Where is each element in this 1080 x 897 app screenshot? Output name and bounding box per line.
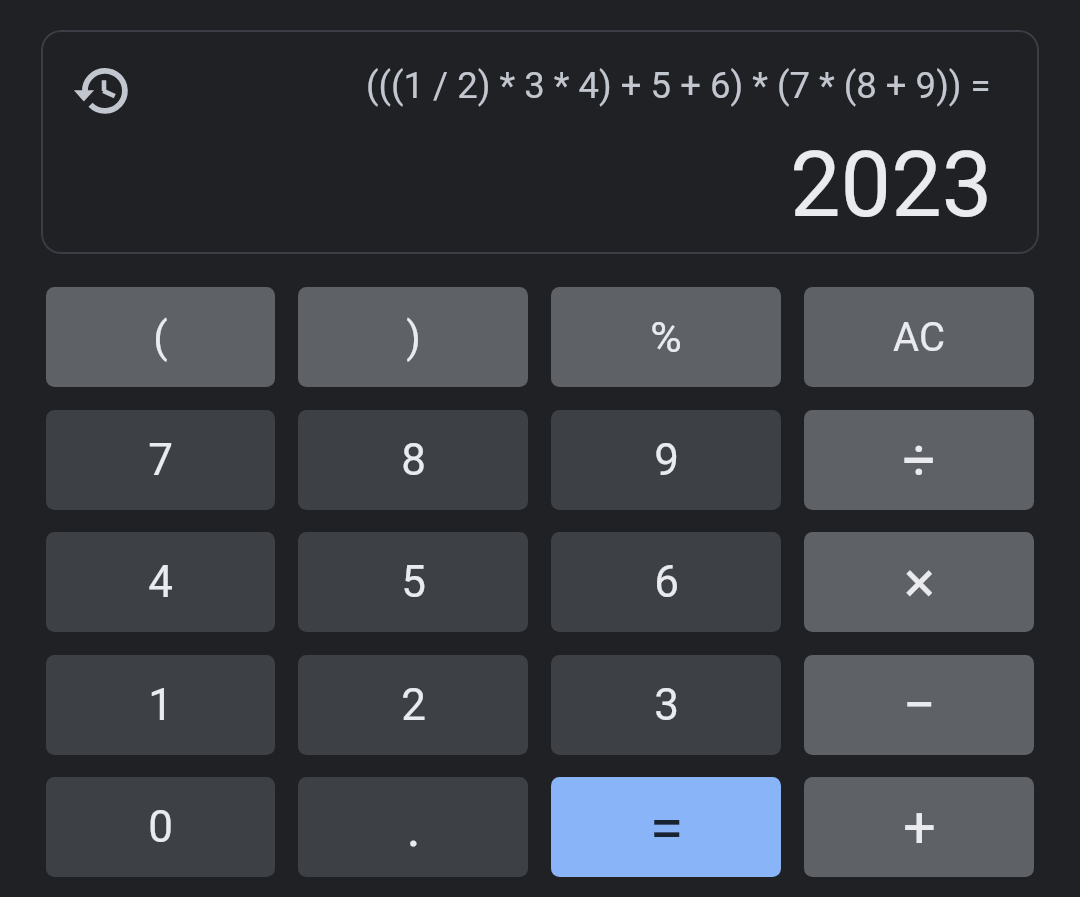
staticText: AC <box>893 314 945 361</box>
button[interactable]: 4 <box>46 532 275 632</box>
staticText: + <box>903 793 936 861</box>
button[interactable]: Divide <box>804 410 1034 510</box>
button[interactable]: ) <box>298 287 528 387</box>
staticText: 0 <box>148 801 173 853</box>
button[interactable]: ( <box>46 287 275 387</box>
button[interactable]: Add <box>804 777 1034 877</box>
staticText: ( <box>153 313 168 362</box>
button[interactable]: 7 <box>46 410 275 510</box>
button[interactable]: History <box>69 59 135 125</box>
button[interactable]: . <box>298 777 528 877</box>
staticText: 5 <box>401 556 426 608</box>
staticText: . <box>406 796 421 859</box>
button[interactable]: Subtract <box>804 655 1034 755</box>
staticText: 2023 <box>790 133 993 238</box>
button[interactable]: 9 <box>551 410 781 510</box>
button[interactable]: 2 <box>298 655 528 755</box>
button[interactable]: 3 <box>551 655 781 755</box>
button[interactable]: 8 <box>298 410 528 510</box>
staticText: 9 <box>654 434 679 486</box>
staticText: (((1 / 2) * 3 * 4) + 5 + 6) * (7 * (8 + … <box>366 64 991 107</box>
staticText: 6 <box>654 556 679 608</box>
staticText: 2 <box>401 679 426 731</box>
button[interactable]: % <box>551 287 781 387</box>
button[interactable]: 6 <box>551 532 781 632</box>
staticText: 8 <box>401 434 426 486</box>
staticText: % <box>650 312 682 362</box>
staticText: = <box>649 791 684 864</box>
staticText: 1 <box>148 679 173 731</box>
button[interactable]: 0 <box>46 777 275 877</box>
staticText: 7 <box>148 434 173 486</box>
button[interactable]: Multiply <box>804 532 1034 632</box>
staticText: ÷ <box>902 426 936 494</box>
button[interactable]: 1 <box>46 655 275 755</box>
staticText: 3 <box>654 679 679 731</box>
button[interactable]: Equals <box>551 777 781 877</box>
button[interactable]: AC <box>804 287 1034 387</box>
button[interactable]: 5 <box>298 532 528 632</box>
staticText: − <box>902 671 936 739</box>
staticText: 4 <box>148 556 173 608</box>
staticText: ) <box>406 313 421 362</box>
staticText: × <box>904 548 935 616</box>
